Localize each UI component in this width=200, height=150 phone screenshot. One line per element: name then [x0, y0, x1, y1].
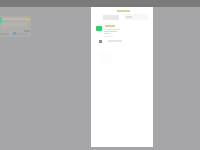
button[interactable]: [93, 24, 151, 38]
button[interactable]: Background window: [0, 16, 31, 37]
button[interactable]: [95, 38, 135, 44]
